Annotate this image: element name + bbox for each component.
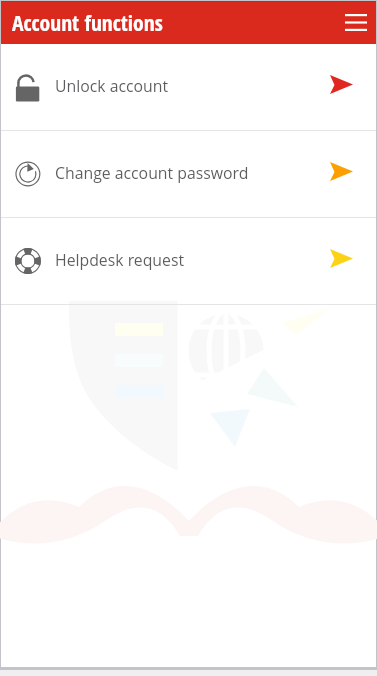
staticText: Helpdesk request (55, 249, 185, 271)
staticText: Change account password (55, 162, 249, 184)
staticText: Account functions (12, 8, 163, 37)
button[interactable]: Unlock account (1, 44, 376, 130)
button[interactable]: Open navigation menu (345, 14, 367, 31)
button[interactable]: Helpdesk request (1, 218, 376, 304)
staticText: Unlock account (55, 75, 168, 97)
button[interactable]: Change account password (1, 131, 376, 217)
